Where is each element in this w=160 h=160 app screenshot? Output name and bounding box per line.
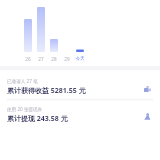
staticText: 使用 20 张提现券 <box>7 106 43 112</box>
staticText: 已邀请人 27 笔 <box>7 78 38 84</box>
staticText: 28 <box>51 56 57 62</box>
button[interactable]: Earnings detail <box>144 85 151 92</box>
staticText: 累计提现 243.58 元 <box>7 114 68 124</box>
staticText: 29 <box>64 56 70 62</box>
staticText: 26 <box>25 56 31 62</box>
staticText: 累计获得收益 5281.55 元 <box>7 86 86 96</box>
button[interactable]: Withdraw detail <box>144 113 151 120</box>
button[interactable] <box>0 101 160 160</box>
staticText: 27 <box>38 56 44 62</box>
button[interactable] <box>0 73 160 160</box>
staticText: 今天 <box>75 56 85 62</box>
